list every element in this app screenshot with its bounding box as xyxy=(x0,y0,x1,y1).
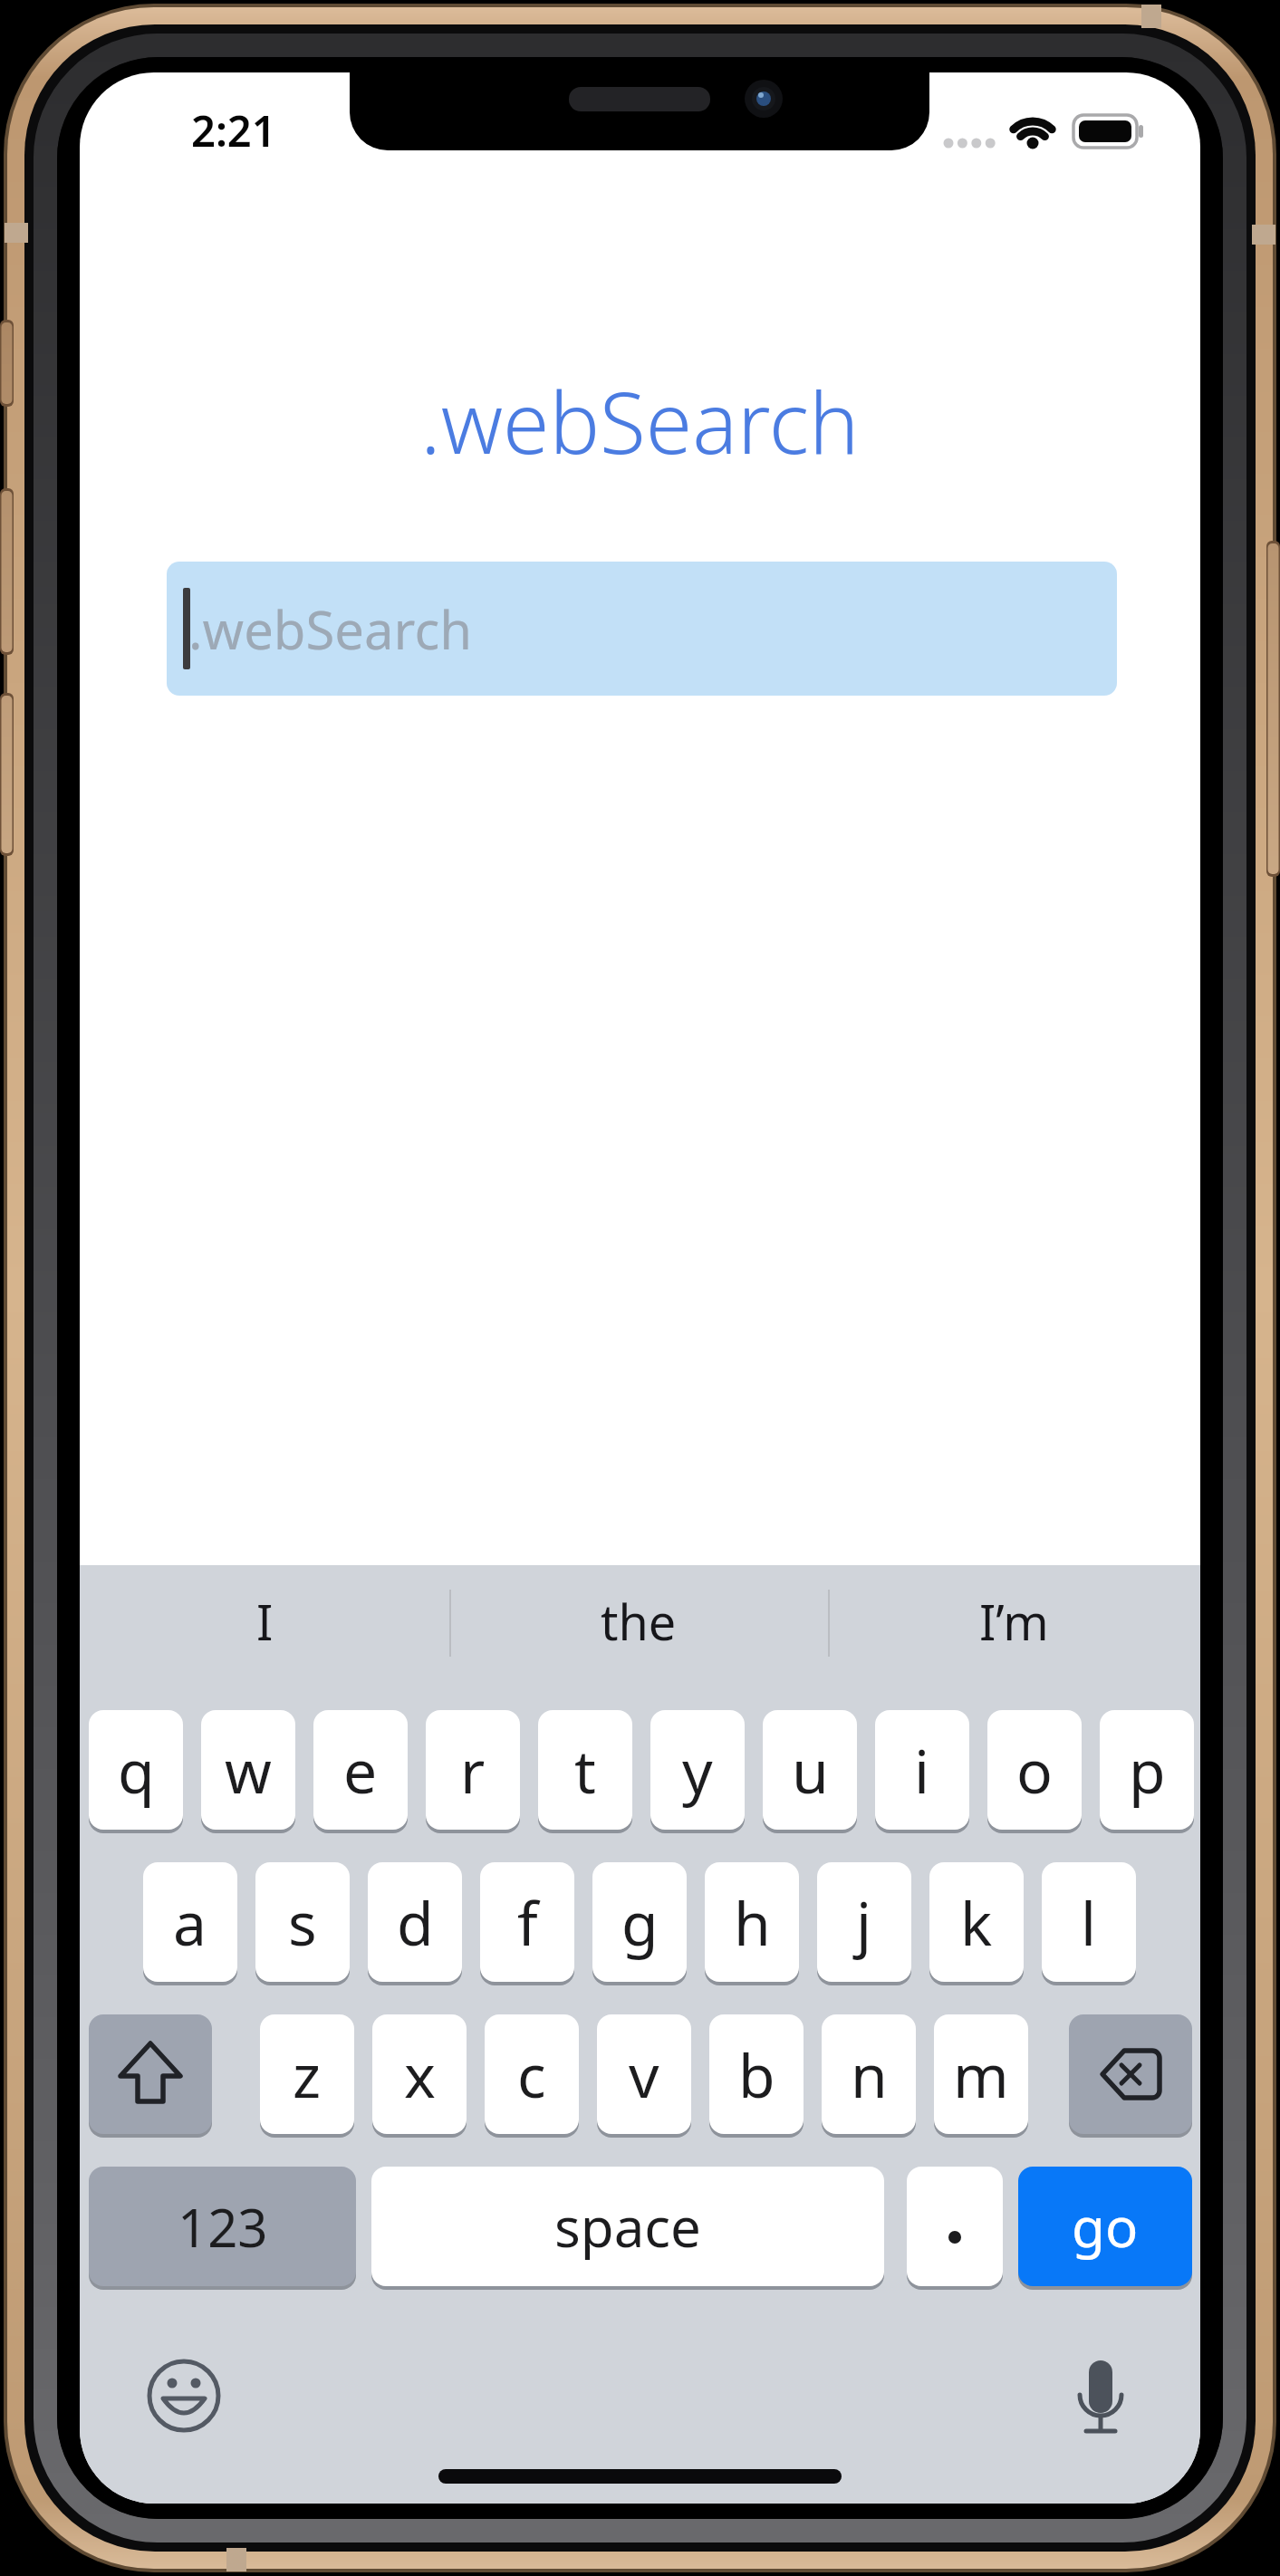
button[interactable]: t xyxy=(538,1710,632,1830)
button[interactable]: m xyxy=(934,2014,1028,2134)
staticText: k xyxy=(960,1881,993,1963)
staticText: g xyxy=(621,1881,659,1963)
button[interactable]: d xyxy=(368,1862,462,1982)
staticText: w xyxy=(225,1729,272,1811)
staticText: v xyxy=(629,2033,659,2115)
button[interactable]: 123 xyxy=(89,2167,356,2286)
staticText: x xyxy=(404,2033,436,2115)
button[interactable]: l xyxy=(1042,1862,1136,1982)
button[interactable]: k xyxy=(929,1862,1024,1982)
button[interactable]: o xyxy=(987,1710,1082,1830)
staticText: y xyxy=(682,1729,713,1811)
button[interactable]: i xyxy=(875,1710,969,1830)
button[interactable]: p xyxy=(1100,1710,1194,1830)
button[interactable]: e xyxy=(313,1710,408,1830)
button[interactable] xyxy=(89,2014,212,2134)
button[interactable]: n xyxy=(822,2014,916,2134)
button[interactable]: b xyxy=(709,2014,804,2134)
button[interactable]: I xyxy=(80,1576,449,1667)
button[interactable]: f xyxy=(480,1862,574,1982)
staticText: the xyxy=(601,1588,677,1655)
staticText: o xyxy=(1016,1729,1053,1811)
button[interactable]: y xyxy=(650,1710,745,1830)
staticText: r xyxy=(460,1729,486,1811)
staticText: f xyxy=(517,1881,538,1963)
button[interactable]: q xyxy=(89,1710,183,1830)
staticText: .webSearch xyxy=(420,364,860,473)
button[interactable] xyxy=(1069,2014,1192,2134)
staticText: m xyxy=(953,2033,1009,2115)
button[interactable]: the xyxy=(449,1576,828,1667)
button[interactable]: j xyxy=(817,1862,911,1982)
staticText: space xyxy=(554,2189,701,2264)
staticText: e xyxy=(343,1729,378,1811)
button[interactable]: c xyxy=(485,2014,579,2134)
staticText: u xyxy=(792,1729,829,1811)
staticText: p xyxy=(1129,1729,1166,1811)
staticText: 2:21 xyxy=(191,101,276,156)
button[interactable]: space xyxy=(371,2167,884,2286)
button[interactable]: r xyxy=(426,1710,520,1830)
button[interactable]: h xyxy=(705,1862,799,1982)
staticText: c xyxy=(517,2033,546,2115)
staticText: b xyxy=(738,2033,775,2115)
button[interactable]: g xyxy=(592,1862,687,1982)
button[interactable]: w xyxy=(201,1710,295,1830)
staticText: I’m xyxy=(979,1588,1049,1655)
button[interactable]: v xyxy=(597,2014,691,2134)
button[interactable]: z xyxy=(260,2014,354,2134)
button[interactable]: .webSearch xyxy=(167,562,1117,696)
staticText: n xyxy=(851,2033,888,2115)
button[interactable]: x xyxy=(372,2014,467,2134)
staticText: .webSearch xyxy=(188,593,473,665)
staticText: l xyxy=(1081,1881,1097,1963)
staticText: j xyxy=(856,1881,872,1963)
staticText: I xyxy=(256,1588,274,1655)
staticText: z xyxy=(293,2033,322,2115)
button[interactable]: s xyxy=(255,1862,350,1982)
staticText: a xyxy=(173,1881,207,1963)
staticText: t xyxy=(574,1729,596,1811)
button[interactable]: I’m xyxy=(828,1576,1200,1667)
button[interactable]: a xyxy=(143,1862,237,1982)
button[interactable]: go xyxy=(1018,2167,1192,2286)
staticText: q xyxy=(118,1729,155,1811)
button[interactable]: u xyxy=(763,1710,857,1830)
staticText: d xyxy=(397,1881,434,1963)
button[interactable] xyxy=(907,2167,1003,2286)
staticText: s xyxy=(288,1881,317,1963)
staticText: i xyxy=(914,1729,930,1811)
staticText: 123 xyxy=(178,2191,268,2263)
staticText: h xyxy=(734,1881,771,1963)
staticText: go xyxy=(1072,2189,1139,2264)
